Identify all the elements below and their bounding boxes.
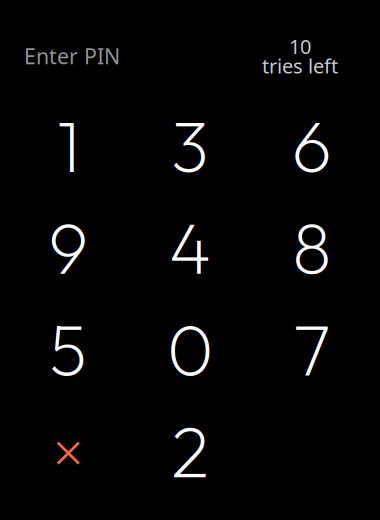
button[interactable]: 5 [7, 298, 129, 400]
button[interactable]: 2 [129, 400, 251, 502]
button[interactable]: 6 [251, 95, 372, 197]
button[interactable]: 8 [251, 197, 372, 299]
staticText: 8 [292, 203, 331, 292]
staticText: 6 [292, 101, 332, 190]
button[interactable]: Delete [7, 400, 129, 502]
staticText: 5 [49, 305, 87, 394]
staticText: 0 [167, 305, 213, 394]
button[interactable]: 3 [129, 95, 251, 197]
staticText: 1 [57, 101, 80, 190]
staticText: 10 [289, 33, 311, 60]
button[interactable]: 1 [7, 95, 129, 197]
staticText: 9 [48, 203, 88, 292]
staticText: 3 [171, 101, 209, 190]
staticText: 4 [169, 203, 211, 292]
staticText: 2 [171, 407, 209, 496]
button[interactable]: 0 [129, 298, 251, 400]
button[interactable]: 7 [251, 298, 372, 400]
button[interactable]: 4 [129, 197, 251, 299]
staticText: Enter PIN [24, 42, 120, 70]
staticText: tries left [262, 53, 338, 79]
button[interactable]: 9 [7, 197, 129, 299]
staticText: 7 [293, 305, 330, 394]
